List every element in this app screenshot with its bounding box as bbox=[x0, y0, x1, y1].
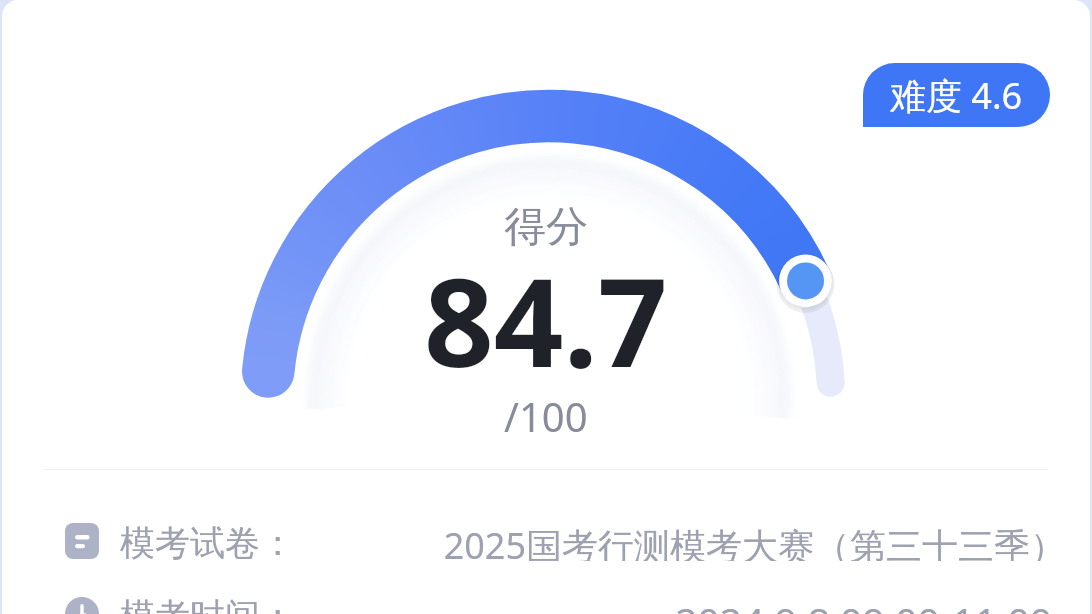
button[interactable]: Exam time bbox=[65, 594, 1050, 614]
staticText: 得分 bbox=[504, 201, 588, 254]
staticText: 84.7 bbox=[424, 237, 668, 403]
staticText: 模考时间： bbox=[120, 594, 295, 614]
staticText: /100 bbox=[504, 389, 588, 443]
staticText: 2025国考行测模考大赛（第三十三季） bbox=[443, 521, 1066, 561]
other: Exam paper bbox=[65, 523, 99, 559]
staticText: 模考试卷： bbox=[120, 521, 295, 561]
staticText: 难度 4.6 bbox=[890, 71, 1023, 120]
button[interactable]: Exam paper bbox=[65, 521, 1050, 561]
button[interactable]: 难度 4.6 bbox=[863, 63, 1050, 127]
staticText: 2024.9.8 09:00-11:00 bbox=[675, 594, 1052, 614]
other: Exam time bbox=[65, 596, 99, 614]
